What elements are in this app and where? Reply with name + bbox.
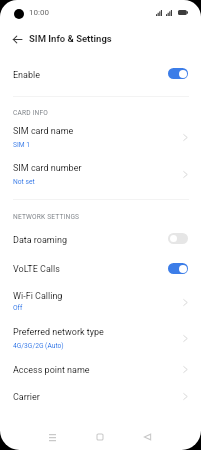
staticText: Off bbox=[13, 304, 23, 312]
staticText: SIM Info & Settings bbox=[29, 33, 112, 44]
button[interactable] bbox=[0, 62, 201, 89]
button[interactable] bbox=[0, 120, 201, 157]
button[interactable] bbox=[0, 321, 201, 359]
button[interactable]: Recents bbox=[42, 427, 62, 447]
button[interactable] bbox=[0, 285, 201, 321]
staticText: CARD INFO bbox=[13, 109, 48, 117]
staticText: SIM card name bbox=[13, 126, 74, 137]
staticText: SIM 1 bbox=[13, 141, 31, 149]
staticText: Access point name bbox=[13, 365, 90, 376]
staticText: Carrier bbox=[13, 392, 40, 403]
staticText: Wi-Fi Calling bbox=[13, 291, 63, 302]
staticText: Not set bbox=[13, 178, 35, 186]
staticText: NETWORK SETTINGS bbox=[13, 213, 80, 221]
staticText: 4G/3G/2G (Auto) bbox=[13, 342, 64, 350]
staticText: 10:00 bbox=[29, 8, 49, 17]
button[interactable] bbox=[0, 386, 201, 413]
staticText: VoLTE Calls bbox=[13, 264, 60, 275]
staticText: Preferred network type bbox=[13, 327, 104, 338]
button[interactable]: Toggle off bbox=[168, 233, 188, 244]
button[interactable] bbox=[0, 157, 201, 194]
button[interactable]: Home bbox=[90, 427, 110, 447]
button[interactable] bbox=[0, 359, 201, 386]
button[interactable] bbox=[0, 258, 201, 285]
button[interactable] bbox=[0, 228, 201, 256]
button[interactable]: Toggle on bbox=[168, 68, 188, 79]
staticText: Data roaming bbox=[13, 235, 67, 246]
staticText: Enable bbox=[13, 70, 40, 81]
button[interactable]: Back bbox=[137, 427, 157, 447]
button[interactable]: Toggle on bbox=[168, 263, 188, 274]
button[interactable]: Back bbox=[9, 31, 25, 47]
staticText: SIM card number bbox=[13, 163, 82, 174]
